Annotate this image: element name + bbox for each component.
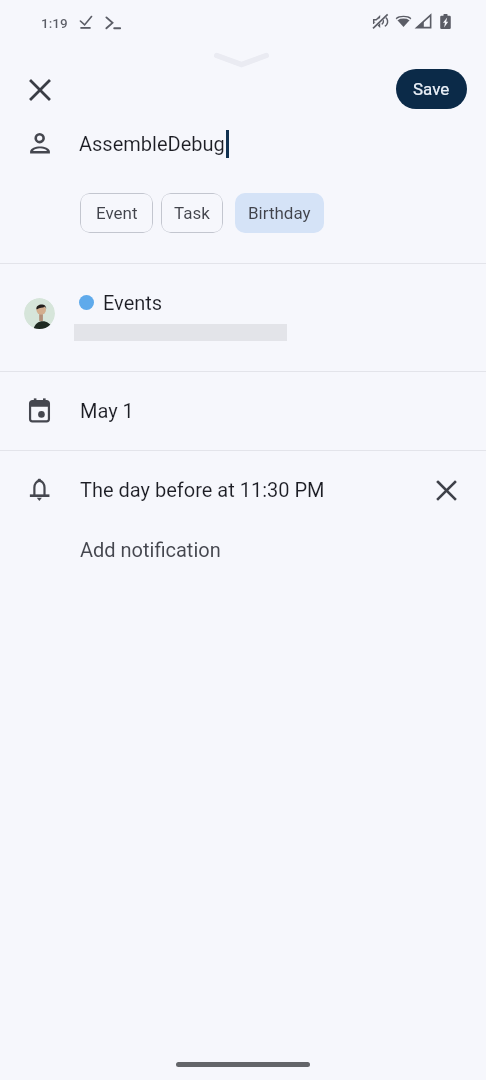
staticText: Save [413,79,450,99]
button[interactable] [0,120,486,168]
button[interactable] [0,264,486,371]
button[interactable]: Task [161,193,223,233]
button[interactable]: Save [396,69,467,109]
staticText: Add notification [80,538,221,561]
button[interactable] [0,372,486,450]
button[interactable]: Remove notification [426,470,466,510]
button[interactable]: Close [19,69,60,110]
staticText: 1:19 [41,15,68,31]
button[interactable] [0,451,486,529]
staticText: Events [103,291,163,314]
button[interactable]: Birthday [235,193,324,233]
staticText: May 1 [80,399,134,422]
staticText: AssembleDebug [79,132,225,155]
staticText: The day before at 11:30 PM [80,478,325,501]
button[interactable] [0,529,486,579]
staticText: Task [174,203,210,223]
button[interactable]: Event [80,193,153,233]
staticText: Event [96,203,138,223]
staticText: Birthday [248,203,311,223]
